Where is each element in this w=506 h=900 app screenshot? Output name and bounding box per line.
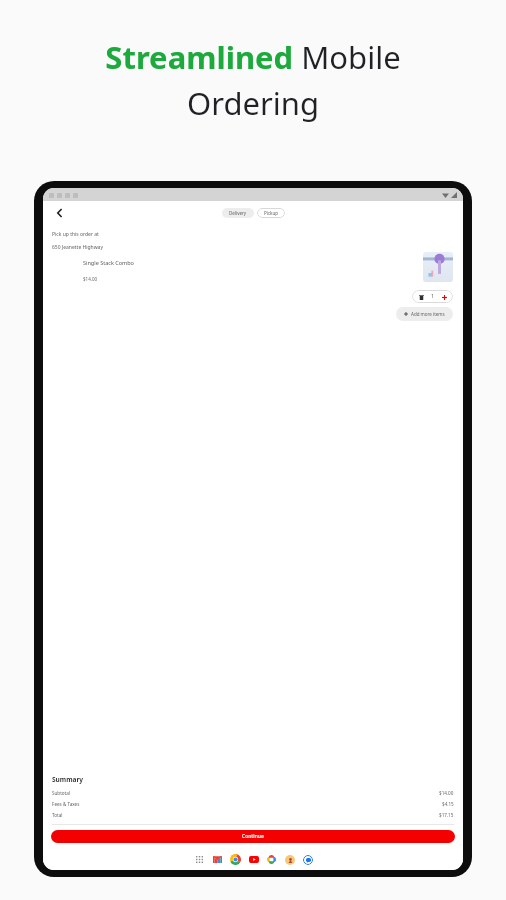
button[interactable]: Gmail — [211, 853, 224, 866]
staticText: Subtotal — [52, 790, 71, 796]
button[interactable]: Chrome — [229, 853, 242, 866]
staticText: Pick up this order at — [52, 231, 99, 238]
staticText: Add more items — [411, 311, 445, 317]
staticText: Single Stack Combo — [83, 259, 134, 266]
staticText: Pickup — [264, 210, 278, 216]
staticText: Fees & Taxes — [52, 801, 80, 807]
staticText: Summary — [52, 775, 83, 784]
button[interactable]: Contacts — [283, 853, 296, 866]
staticText: Ordering — [187, 82, 319, 124]
staticText: $14.00 — [439, 790, 454, 796]
button[interactable]: Remove item — [412, 290, 453, 303]
staticText: Continue — [242, 833, 264, 840]
staticText: Total — [52, 812, 63, 818]
button[interactable]: Back — [51, 204, 69, 222]
staticText: Delivery — [229, 210, 247, 216]
staticText: $4.15 — [442, 801, 454, 807]
button[interactable]: Pickup — [257, 208, 285, 218]
button[interactable]: All apps — [193, 853, 206, 866]
other: Remove item — [418, 294, 424, 300]
staticText: 650 Jeanette Highway — [52, 244, 103, 251]
staticText: Streamlined Mobile — [105, 36, 401, 78]
button[interactable]: Continue — [51, 830, 455, 843]
button[interactable]: YouTube — [247, 853, 260, 866]
other: Add item — [441, 294, 447, 300]
staticText: 1 — [431, 293, 434, 300]
button[interactable]: Add more items — [396, 307, 453, 321]
staticText: $14.00 — [83, 276, 98, 282]
button[interactable]: Delivery — [222, 208, 254, 218]
staticText: $17.15 — [439, 812, 454, 818]
button[interactable]: Messages — [301, 853, 314, 866]
button[interactable]: Google Photos — [265, 853, 278, 866]
